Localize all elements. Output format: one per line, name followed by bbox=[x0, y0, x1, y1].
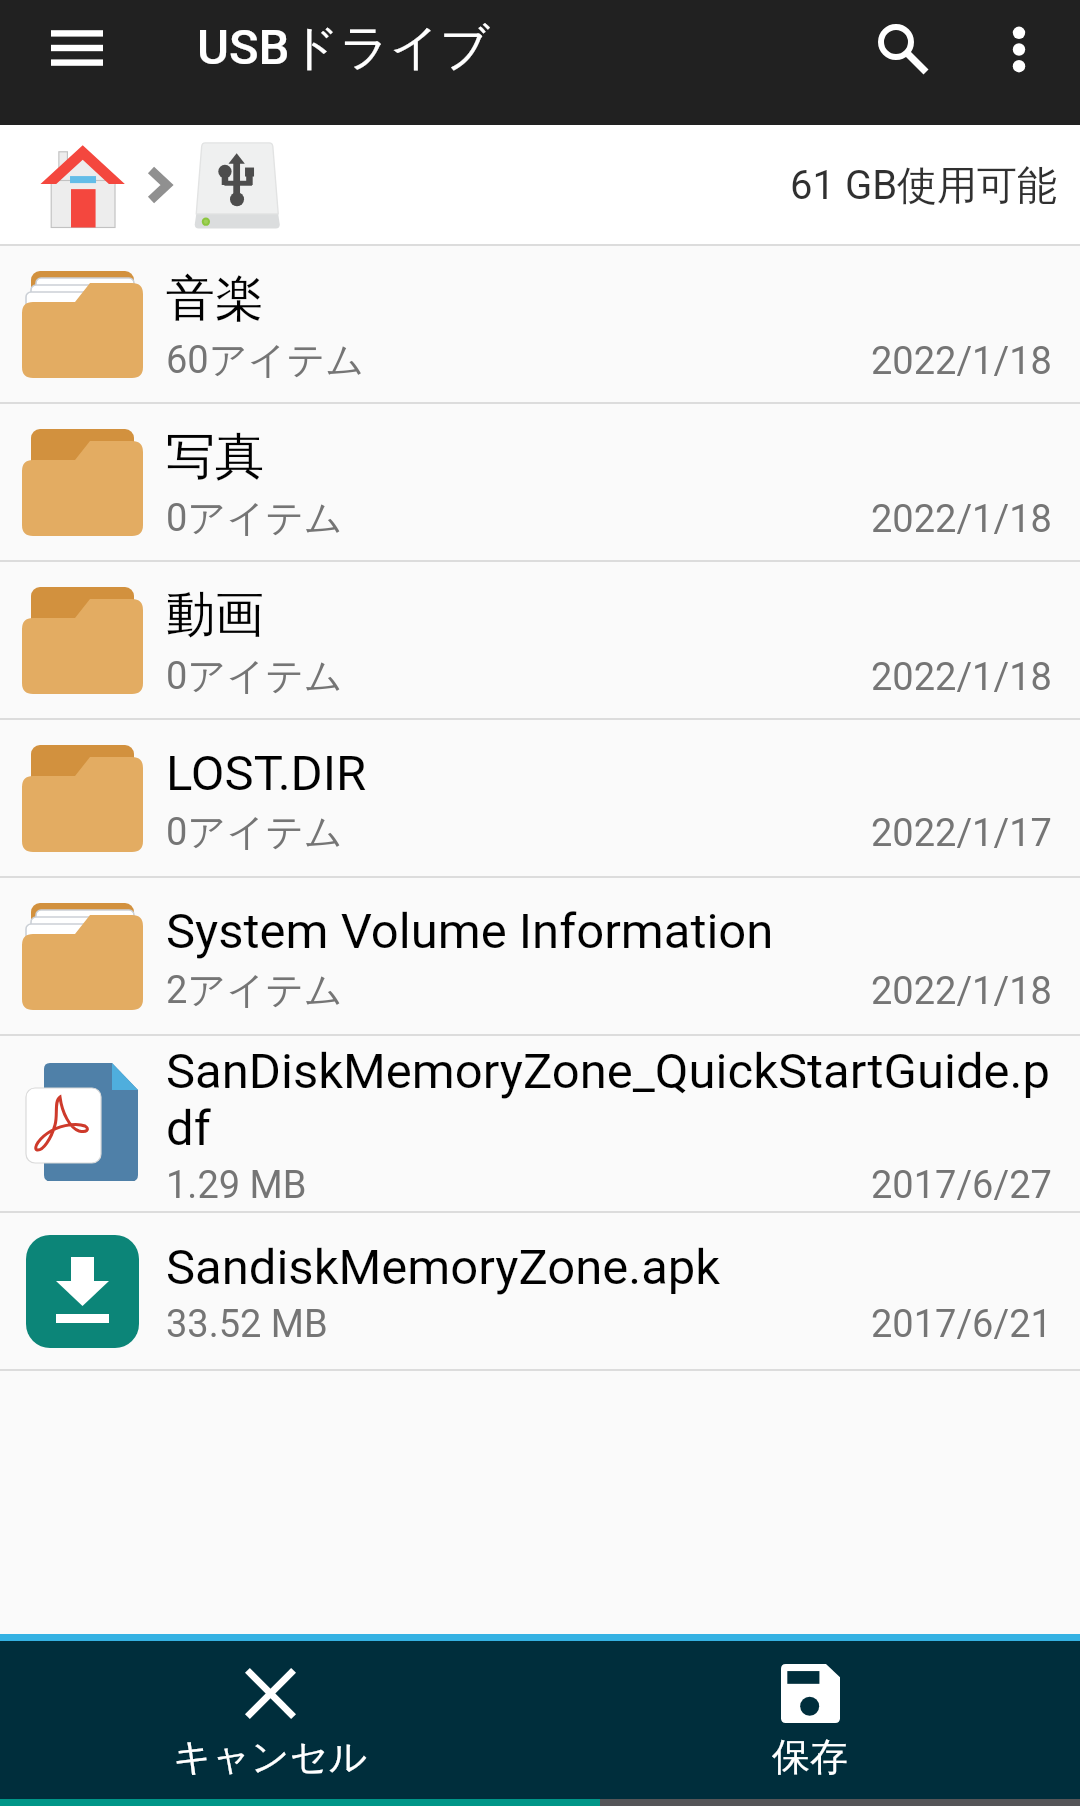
button[interactable]: Cancel bbox=[0, 1641, 540, 1799]
button[interactable]: Save bbox=[540, 1641, 1080, 1799]
staticText: 2アイテム bbox=[166, 966, 343, 1014]
staticText: 1.29 MB bbox=[166, 1163, 307, 1208]
button[interactable]: 音楽 bbox=[0, 246, 1080, 402]
staticText: 2022/1/18 bbox=[871, 655, 1052, 700]
staticText: 33.52 MB bbox=[166, 1302, 328, 1347]
staticText: System Volume Information bbox=[166, 903, 774, 960]
button[interactable]: LOST.DIR bbox=[0, 720, 1080, 876]
staticText: 写真 bbox=[166, 426, 264, 488]
staticText: 0アイテム bbox=[166, 494, 343, 542]
button[interactable]: System Volume Information bbox=[0, 878, 1080, 1034]
button[interactable]: SanDiskMemoryZone_QuickStartGuide.pdf bbox=[0, 1036, 1080, 1211]
staticText: 2022/1/17 bbox=[871, 811, 1052, 856]
staticText: 2022/1/18 bbox=[871, 969, 1052, 1014]
staticText: 音楽 bbox=[166, 268, 264, 330]
staticText: 2022/1/18 bbox=[871, 339, 1052, 384]
staticText: 61 GB使用可能 bbox=[790, 160, 1058, 210]
button[interactable]: Home bbox=[36, 140, 126, 230]
staticText: 動画 bbox=[166, 584, 264, 646]
staticText: LOST.DIR bbox=[166, 745, 367, 802]
staticText: 0アイテム bbox=[166, 652, 343, 700]
staticText: 60アイテム bbox=[166, 336, 365, 384]
staticText: SandiskMemoryZone.apk bbox=[166, 1239, 721, 1296]
button[interactable]: Search bbox=[850, 0, 954, 96]
button[interactable]: Navigation menu bbox=[25, 0, 129, 96]
staticText: SanDiskMemoryZone_QuickStartGuide.pdf bbox=[166, 1043, 1052, 1157]
button[interactable]: 写真 bbox=[0, 404, 1080, 560]
button[interactable]: 動画 bbox=[0, 562, 1080, 718]
button[interactable]: SandiskMemoryZone.apk bbox=[0, 1213, 1080, 1369]
button[interactable]: More options bbox=[967, 0, 1071, 96]
staticText: 2017/6/21 bbox=[871, 1302, 1052, 1347]
staticText: キャンセル bbox=[173, 1733, 368, 1781]
staticText: 保存 bbox=[772, 1733, 848, 1781]
staticText: USBドライブ bbox=[197, 17, 491, 79]
staticText: 0アイテム bbox=[166, 808, 343, 856]
button[interactable]: USB drive bbox=[194, 140, 284, 230]
staticText: 2017/6/27 bbox=[871, 1163, 1052, 1208]
staticText: 2022/1/18 bbox=[871, 497, 1052, 542]
